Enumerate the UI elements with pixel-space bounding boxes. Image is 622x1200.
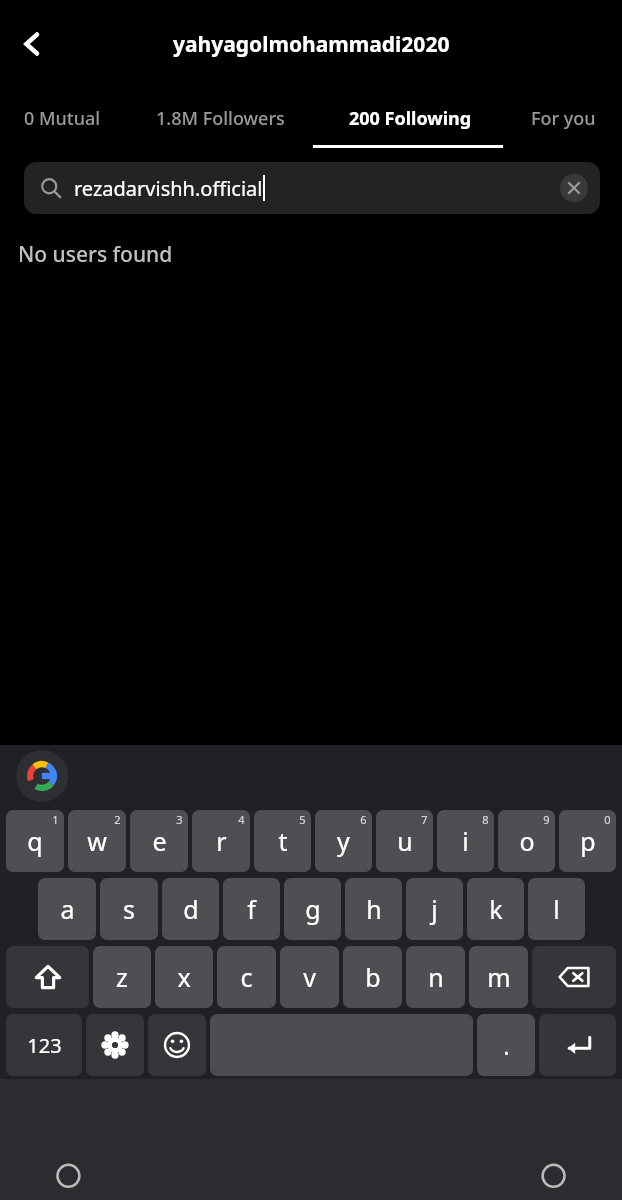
staticText: n — [428, 960, 444, 994]
button[interactable]: s — [100, 878, 158, 940]
button[interactable]: Backspace — [532, 946, 616, 1008]
button[interactable]: Enter — [539, 1014, 616, 1076]
button[interactable]: For you — [505, 88, 622, 148]
button[interactable]: r — [192, 810, 250, 872]
staticText: 2 — [114, 812, 121, 827]
button[interactable]: o — [498, 810, 555, 872]
staticText: u — [397, 824, 413, 858]
staticText: 0 — [604, 812, 611, 827]
staticText: s — [123, 892, 135, 926]
button[interactable]: Clear — [556, 170, 592, 206]
button[interactable]: 1.8M Followers — [125, 88, 315, 148]
button[interactable]: m — [469, 946, 528, 1008]
button[interactable]: Back — [4, 16, 60, 72]
staticText: 123 — [27, 1032, 62, 1059]
staticText: For you — [531, 106, 596, 131]
staticText: 7 — [421, 812, 428, 827]
button[interactable]: y — [315, 810, 372, 872]
button[interactable]: Google — [16, 750, 68, 802]
button[interactable]: 0 Mutual — [0, 88, 125, 148]
staticText: No users found — [18, 240, 173, 269]
button[interactable]: v — [280, 946, 339, 1008]
button[interactable]: Settings — [86, 1014, 144, 1076]
staticText: d — [183, 892, 199, 926]
staticText: e — [152, 824, 167, 858]
staticText: l — [553, 892, 560, 926]
button[interactable]: q — [6, 810, 64, 872]
staticText: g — [305, 892, 321, 926]
button[interactable]: 123 — [6, 1014, 82, 1076]
button[interactable]: a — [38, 878, 96, 940]
staticText: a — [60, 892, 75, 926]
button[interactable]: i — [437, 810, 494, 872]
staticText: z — [116, 960, 128, 994]
button[interactable]: n — [406, 946, 465, 1008]
button[interactable]: d — [162, 878, 219, 940]
staticText: p — [580, 824, 596, 858]
button[interactable]: 200 Following — [315, 88, 505, 148]
staticText: 8 — [482, 812, 489, 827]
button[interactable]: f — [223, 878, 280, 940]
button[interactable]: . — [477, 1014, 535, 1076]
button[interactable]: z — [93, 946, 151, 1008]
button[interactable]: w — [68, 810, 126, 872]
staticText: o — [519, 824, 535, 858]
staticText: h — [366, 892, 382, 926]
button[interactable]: Shift — [6, 946, 89, 1008]
button[interactable]: rezadarvishh.official — [24, 162, 600, 214]
button[interactable]: j — [406, 878, 463, 940]
staticText: 0 Mutual — [24, 106, 101, 131]
staticText: 6 — [360, 812, 367, 827]
staticText: m — [487, 960, 511, 994]
staticText: 1 — [52, 812, 59, 827]
button[interactable]: h — [345, 878, 402, 940]
staticText: rezadarvishh.official — [74, 175, 263, 202]
button[interactable]: e — [130, 810, 188, 872]
staticText: x — [177, 960, 191, 994]
button[interactable]: t — [254, 810, 311, 872]
staticText: yahyagolmohammadi2020 — [173, 30, 450, 59]
staticText: i — [462, 824, 469, 858]
button[interactable]: b — [343, 946, 402, 1008]
button[interactable]: c — [217, 946, 276, 1008]
staticText: 5 — [299, 812, 306, 827]
staticText: k — [489, 892, 503, 926]
staticText: 200 Following — [349, 106, 472, 131]
staticText: v — [303, 960, 316, 994]
button[interactable]: k — [467, 878, 524, 940]
staticText: y — [337, 824, 350, 858]
staticText: 1.8M Followers — [156, 106, 285, 131]
staticText: r — [216, 824, 227, 858]
staticText: b — [365, 960, 381, 994]
staticText: c — [240, 960, 253, 994]
staticText: 3 — [176, 812, 183, 827]
staticText: f — [247, 892, 256, 926]
button[interactable]: g — [284, 878, 341, 940]
button[interactable]: x — [155, 946, 213, 1008]
staticText: t — [278, 824, 288, 858]
staticText: 9 — [543, 812, 550, 827]
button[interactable]: Emoji — [148, 1014, 206, 1076]
button[interactable]: p — [559, 810, 616, 872]
staticText: . — [503, 1029, 510, 1062]
staticText: w — [87, 824, 107, 858]
button[interactable]: l — [528, 878, 585, 940]
staticText: j — [431, 892, 438, 926]
button[interactable]: u — [376, 810, 433, 872]
staticText: 4 — [238, 812, 245, 827]
staticText: q — [27, 824, 43, 858]
